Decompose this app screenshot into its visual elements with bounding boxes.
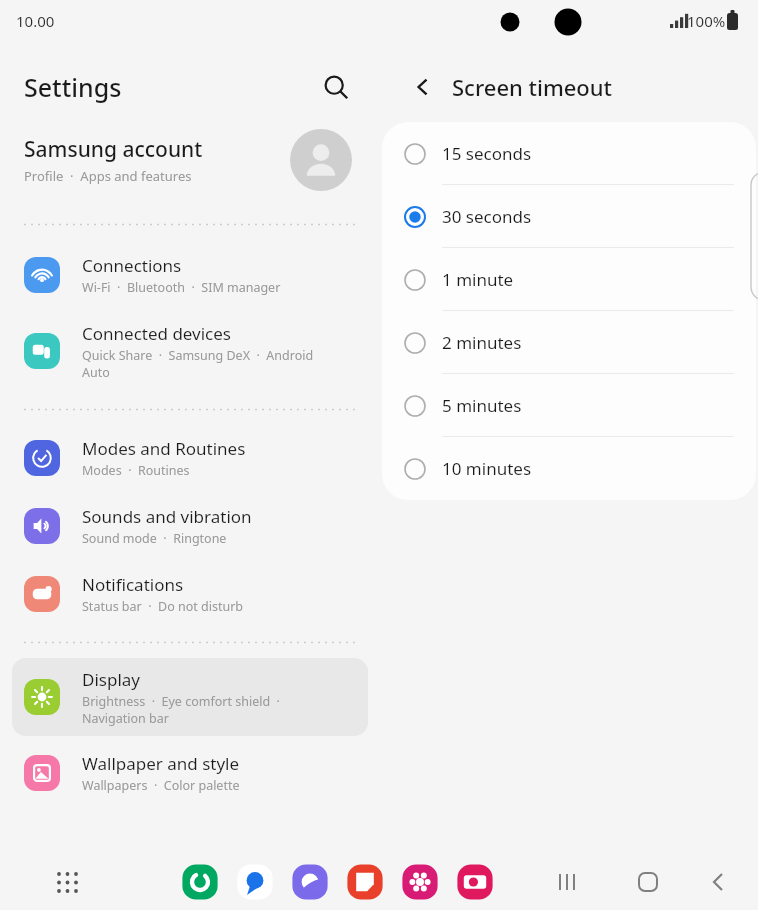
staticText: Wallpaper and style bbox=[82, 752, 240, 775]
staticText: Samsung account bbox=[24, 135, 203, 164]
staticText: 5 minutes bbox=[442, 394, 522, 417]
button[interactable]: Internet bbox=[288, 860, 332, 904]
staticText: 10.00 bbox=[16, 11, 55, 31]
button[interactable]: Notes bbox=[343, 860, 387, 904]
button[interactable]: Samsung account bbox=[0, 118, 380, 202]
button[interactable]: 15 seconds bbox=[382, 122, 756, 185]
staticText: 30 seconds bbox=[442, 205, 532, 228]
button[interactable]: Connections bbox=[12, 244, 368, 306]
staticText: Connected devices bbox=[82, 322, 232, 345]
button[interactable]: Search bbox=[314, 65, 358, 109]
staticText: Settings bbox=[24, 70, 122, 104]
staticText: 100% bbox=[687, 11, 726, 31]
button[interactable]: 30 seconds bbox=[382, 185, 756, 248]
staticText: 1 minute bbox=[442, 268, 514, 291]
button[interactable]: Notifications bbox=[12, 563, 368, 625]
button[interactable]: Phone bbox=[178, 860, 222, 904]
button[interactable]: 1 minute bbox=[382, 248, 756, 311]
button[interactable]: Messages bbox=[233, 860, 277, 904]
button[interactable]: Recents bbox=[548, 862, 588, 902]
button[interactable]: Gallery bbox=[398, 860, 442, 904]
staticText: Brightness · Eye comfort shield · Naviga… bbox=[82, 693, 280, 726]
staticText: Modes and Routines bbox=[82, 437, 246, 460]
staticText: Wi-Fi · Bluetooth · SIM manager bbox=[82, 279, 281, 296]
staticText: Profile · Apps and features bbox=[24, 167, 192, 185]
staticText: Notifications bbox=[82, 573, 184, 596]
button[interactable]: Modes and Routines bbox=[12, 427, 368, 489]
staticText: Wallpapers · Color palette bbox=[82, 777, 240, 794]
button[interactable]: Back bbox=[402, 66, 444, 108]
staticText: Quick Share · Samsung DeX · Android Auto bbox=[82, 347, 314, 380]
staticText: Connections bbox=[82, 254, 182, 277]
staticText: Status bar · Do not disturb bbox=[82, 598, 244, 615]
button[interactable]: Wallpaper and style bbox=[12, 742, 368, 804]
staticText: Screen timeout bbox=[452, 72, 613, 102]
staticText: Modes · Routines bbox=[82, 462, 190, 479]
staticText: Sound mode · Ringtone bbox=[82, 530, 227, 547]
staticText: 10 minutes bbox=[442, 457, 532, 480]
staticText: 15 seconds bbox=[442, 142, 532, 165]
button[interactable]: Home bbox=[628, 862, 668, 902]
button[interactable]: Camera bbox=[453, 860, 497, 904]
button[interactable]: 5 minutes bbox=[382, 374, 756, 437]
button[interactable]: Display bbox=[12, 658, 368, 736]
button[interactable]: Connected devices bbox=[12, 312, 368, 390]
button[interactable]: Back bbox=[698, 862, 738, 902]
button[interactable]: Sounds and vibration bbox=[12, 495, 368, 557]
staticText: Display bbox=[82, 668, 140, 691]
staticText: Sounds and vibration bbox=[82, 505, 252, 528]
staticText: 2 minutes bbox=[442, 331, 522, 354]
button[interactable]: 2 minutes bbox=[382, 311, 756, 374]
button[interactable]: 10 minutes bbox=[382, 437, 756, 500]
button[interactable]: Apps bbox=[46, 861, 88, 903]
